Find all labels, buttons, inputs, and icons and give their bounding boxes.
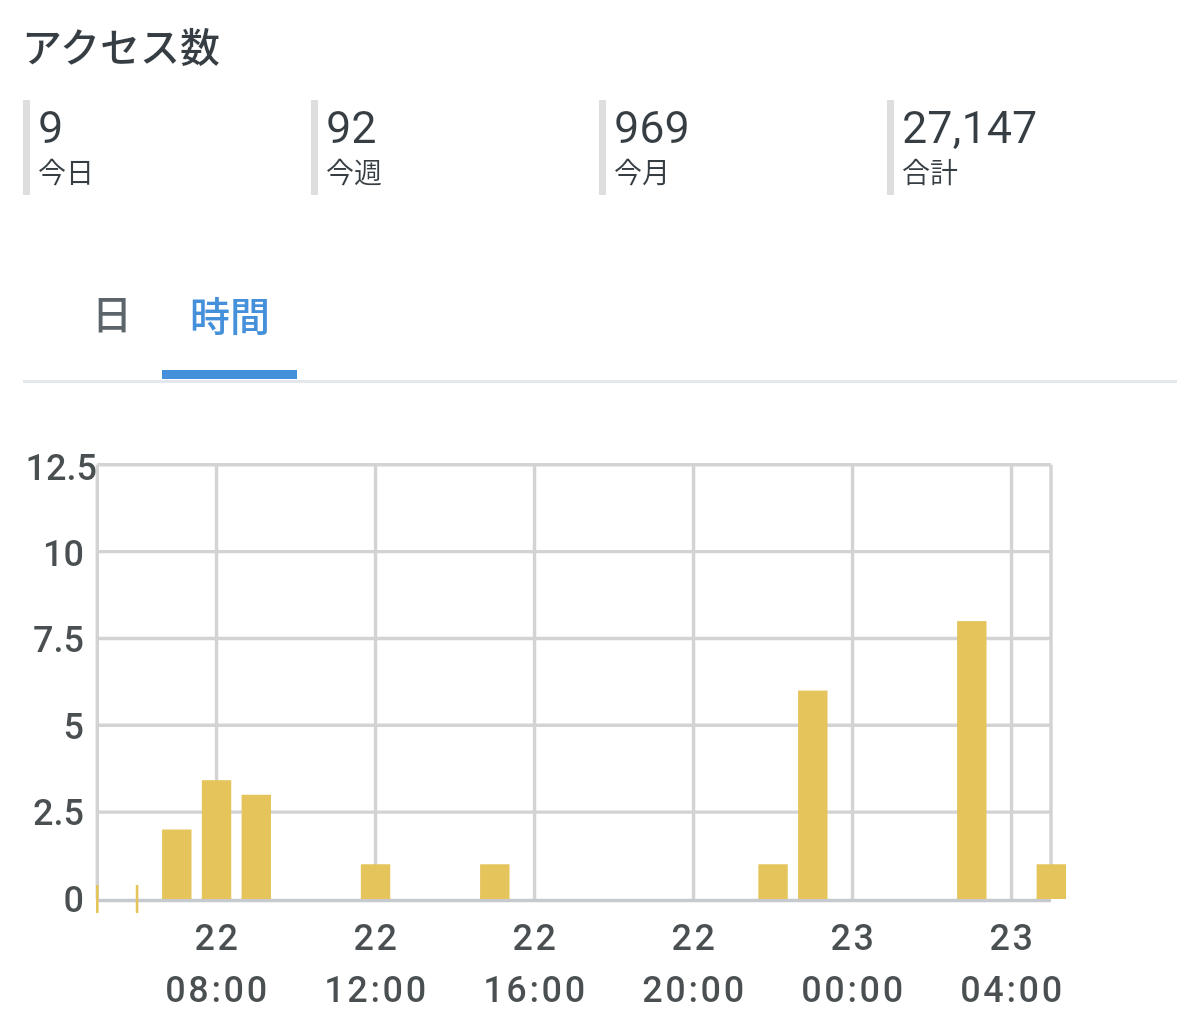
staticText: 日 — [92, 283, 132, 341]
staticText: 27,147 — [902, 101, 1038, 154]
staticText: 7.5 — [33, 619, 84, 661]
staticText: 9 — [38, 101, 64, 154]
other: 時間別アクセス数の棒グラフ — [0, 0, 1200, 1025]
staticText: 00:00 — [801, 969, 906, 1011]
staticText: 969 — [614, 101, 690, 154]
staticText: 22 — [194, 917, 241, 959]
staticText: 23 — [989, 917, 1036, 959]
staticText: 12.5 — [25, 447, 97, 489]
staticText: 22 — [671, 917, 718, 959]
staticText: 今日 — [38, 151, 95, 192]
button[interactable]: 日 — [23, 278, 162, 376]
staticText: 時間 — [190, 285, 270, 343]
staticText: 5 — [63, 706, 84, 748]
staticText: 20:00 — [642, 969, 747, 1011]
staticText: 08:00 — [165, 969, 270, 1011]
button[interactable]: 969 — [599, 100, 871, 195]
staticText: 23 — [830, 917, 877, 959]
staticText: 2.5 — [33, 792, 84, 834]
button[interactable]: 9 — [23, 100, 295, 195]
staticText: 合計 — [902, 151, 959, 192]
staticText: 22 — [512, 917, 559, 959]
staticText: 今週 — [326, 151, 383, 192]
staticText: 0 — [63, 879, 84, 921]
button[interactable]: 92 — [311, 100, 583, 195]
staticText: 22 — [353, 917, 400, 959]
staticText: 04:00 — [960, 969, 1065, 1011]
staticText: 16:00 — [483, 969, 588, 1011]
button[interactable]: 27,147 — [887, 100, 1159, 195]
staticText: 今月 — [614, 151, 671, 192]
staticText: 10 — [43, 533, 84, 575]
staticText: アクセス数 — [22, 16, 220, 74]
staticText: 12:00 — [324, 969, 429, 1011]
staticText: 92 — [326, 101, 377, 154]
button[interactable]: 時間 — [162, 278, 298, 376]
